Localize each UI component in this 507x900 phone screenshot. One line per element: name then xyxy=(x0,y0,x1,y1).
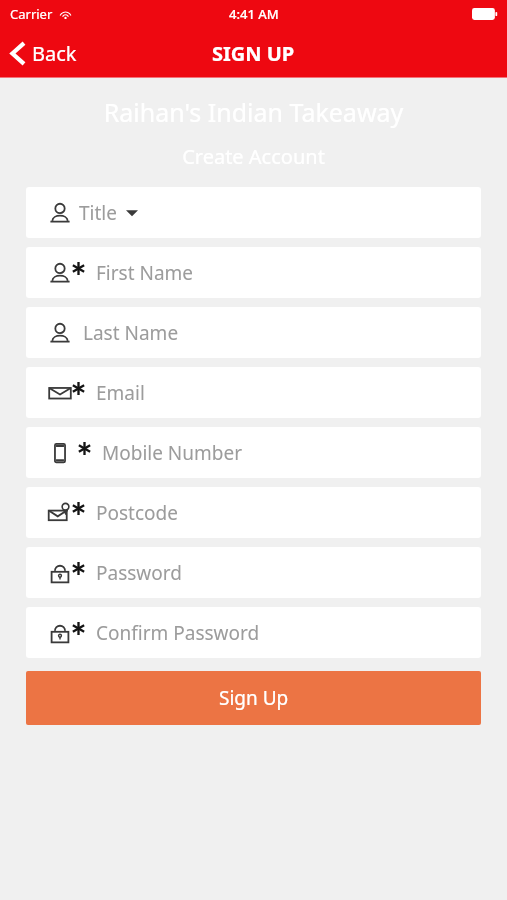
staticText: Raihan's Indian Takeaway xyxy=(0,95,507,129)
button[interactable]: Email xyxy=(26,367,481,418)
staticText: First Name xyxy=(96,260,194,286)
staticText: Title xyxy=(79,200,117,226)
other: Select title xyxy=(126,209,138,217)
button[interactable]: Back xyxy=(0,28,91,78)
staticText: Confirm Password xyxy=(96,620,260,646)
button[interactable]: Title xyxy=(26,187,481,238)
button[interactable]: Mobile Number xyxy=(26,427,481,478)
button[interactable]: Last Name xyxy=(26,307,481,358)
staticText: Last Name xyxy=(83,320,179,346)
staticText: Email xyxy=(96,380,145,406)
staticText: Sign Up xyxy=(219,685,289,711)
button[interactable]: Sign Up xyxy=(26,671,481,725)
button[interactable]: First Name xyxy=(26,247,481,298)
staticText: Carrier xyxy=(10,5,53,23)
staticText: Mobile Number xyxy=(102,440,243,466)
button[interactable]: Confirm Password xyxy=(26,607,481,658)
button[interactable]: Password xyxy=(26,547,481,598)
staticText: SIGN UP xyxy=(212,40,295,67)
staticText: 4:41 AM xyxy=(229,5,279,23)
staticText: Back xyxy=(32,40,77,67)
staticText: Password xyxy=(96,560,182,586)
button[interactable]: Postcode xyxy=(26,487,481,538)
staticText: Postcode xyxy=(96,500,178,526)
